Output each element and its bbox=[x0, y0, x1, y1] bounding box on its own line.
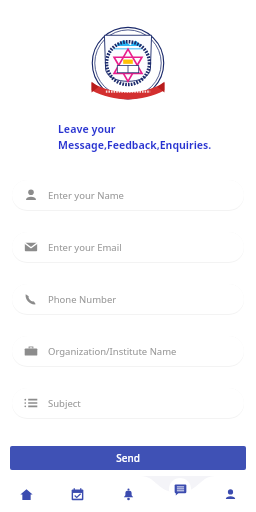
staticText: Message,Feedback,Enquiries. bbox=[58, 138, 212, 152]
staticText: Enter your Name bbox=[48, 189, 124, 202]
button[interactable]: Messages bbox=[169, 478, 191, 500]
staticText: Organization/Institute Name bbox=[48, 345, 177, 358]
button[interactable]: Send bbox=[10, 446, 246, 470]
staticText: Enter your Email bbox=[48, 241, 122, 254]
button[interactable]: Home bbox=[0, 476, 52, 512]
button[interactable]: Notifications bbox=[103, 476, 154, 512]
staticText: Send bbox=[116, 451, 140, 465]
button[interactable]: Profile bbox=[205, 476, 256, 512]
button[interactable]: Subject bbox=[12, 388, 244, 418]
staticText: Leave your bbox=[58, 122, 116, 136]
button[interactable]: Enter your Email bbox=[12, 232, 244, 262]
button[interactable]: Organization/Institute Name bbox=[12, 336, 244, 366]
button[interactable]: Phone Number bbox=[12, 284, 244, 314]
button[interactable]: Enter your Name bbox=[12, 180, 244, 210]
button[interactable]: Calendar bbox=[52, 476, 103, 512]
staticText: Phone Number bbox=[48, 293, 117, 306]
staticText: Subject bbox=[48, 397, 81, 410]
